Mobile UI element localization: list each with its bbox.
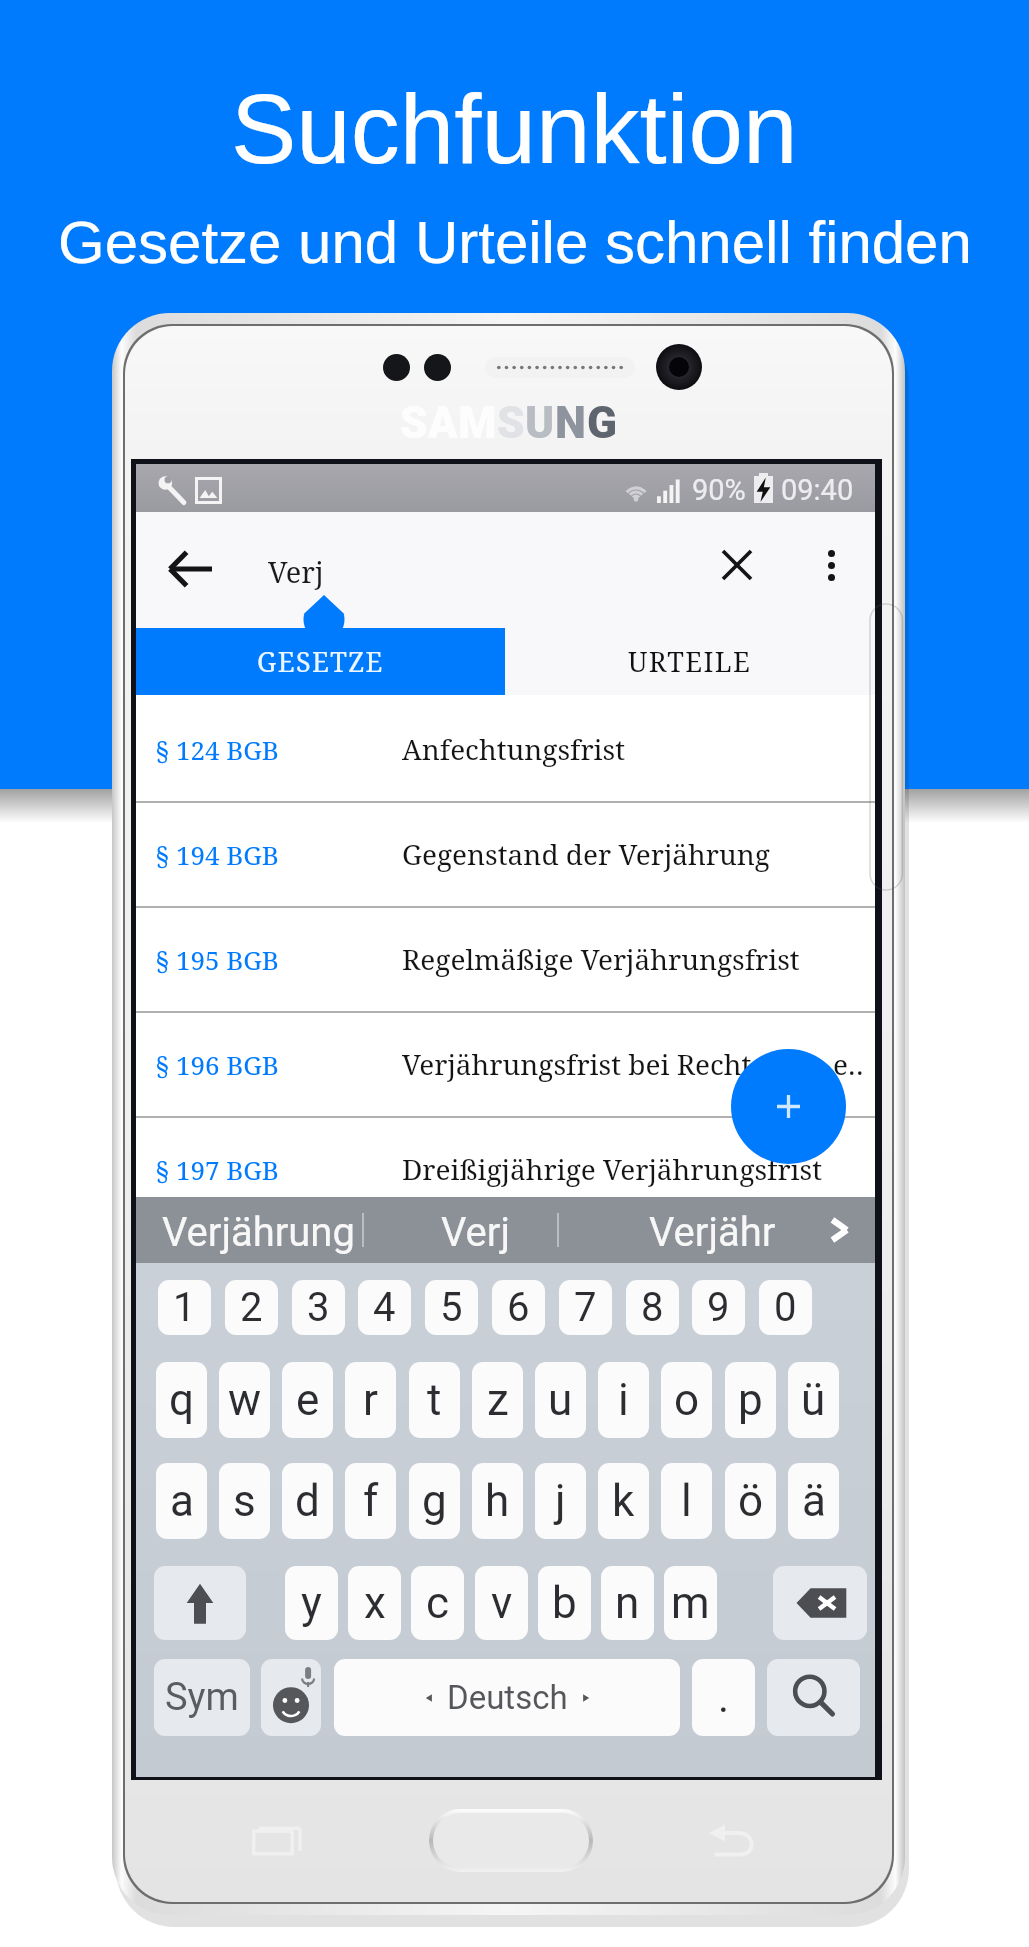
staticText: 0 (774, 1284, 797, 1331)
button[interactable]: . (692, 1659, 755, 1736)
button[interactable]: Backspace (773, 1566, 867, 1640)
button[interactable]: h (472, 1463, 523, 1539)
staticText: URTEILE (628, 643, 752, 680)
button[interactable]: URTEILE (505, 628, 875, 695)
staticText: § 197 BGB (155, 1152, 279, 1187)
button[interactable]: j (535, 1463, 586, 1539)
staticText: U (525, 397, 555, 449)
button[interactable]: § 196 BGB (136, 1013, 875, 1116)
button[interactable]: y (285, 1566, 338, 1640)
button[interactable]: 8 (626, 1280, 679, 1335)
staticText: 8 (641, 1284, 664, 1331)
button[interactable]: p (725, 1362, 776, 1438)
button[interactable]: Deutsch (334, 1659, 680, 1736)
staticText: m (671, 1577, 710, 1629)
staticText: 1 (173, 1284, 196, 1331)
button[interactable]: l (661, 1463, 712, 1539)
button[interactable]: b (538, 1566, 591, 1640)
button[interactable]: g (409, 1463, 460, 1539)
button[interactable]: f (345, 1463, 396, 1539)
button[interactable]: q (156, 1362, 207, 1438)
button[interactable]: Shift (154, 1566, 246, 1640)
staticText: n (615, 1577, 640, 1629)
staticText: 90% (692, 473, 746, 507)
staticText: 09:40 (781, 473, 854, 507)
button[interactable]: v (475, 1566, 528, 1640)
button[interactable]: ü (788, 1362, 839, 1438)
button[interactable]: 9 (692, 1280, 745, 1335)
button[interactable]: s (219, 1463, 270, 1539)
button[interactable]: e (282, 1362, 333, 1438)
staticText: Regelmäßige Verjährungsfrist (402, 940, 864, 978)
staticText: 2 (240, 1284, 263, 1331)
button[interactable]: § 197 BGB (136, 1118, 875, 1198)
button[interactable]: r (345, 1362, 396, 1438)
button[interactable]: More options (802, 536, 860, 594)
staticText: Gegenstand der Verjährung (402, 835, 864, 873)
button[interactable]: o (661, 1362, 712, 1438)
button[interactable]: ä (788, 1463, 839, 1539)
button[interactable]: n (601, 1566, 654, 1640)
button[interactable]: z (472, 1362, 523, 1438)
button[interactable]: 0 (759, 1280, 812, 1335)
staticText: p (738, 1374, 763, 1426)
button[interactable]: d (282, 1463, 333, 1539)
staticText: Dreißigjährige Verjährungsfrist (402, 1150, 864, 1188)
button[interactable]: Sym (154, 1659, 250, 1736)
staticText: g (422, 1475, 447, 1527)
staticText: k (612, 1475, 635, 1527)
button[interactable]: Verjähr (649, 1209, 776, 1256)
button[interactable]: w (219, 1362, 270, 1438)
button[interactable]: a (156, 1463, 207, 1539)
staticText: Sym (165, 1675, 239, 1720)
staticText: 3 (307, 1284, 330, 1331)
button[interactable]: Search (767, 1659, 860, 1736)
button[interactable]: More suggestions (808, 1197, 870, 1263)
button[interactable]: 2 (225, 1280, 278, 1335)
staticText: Anfechtungsfrist (402, 730, 864, 768)
button[interactable]: Emoji (261, 1659, 321, 1736)
button[interactable]: Verjährung (162, 1209, 355, 1256)
button[interactable]: Verj (441, 1209, 510, 1256)
staticText: G (587, 397, 618, 449)
button[interactable]: 5 (425, 1280, 478, 1335)
staticText: t (427, 1374, 442, 1426)
button[interactable]: Recents (246, 1823, 308, 1869)
staticText: GESETZE (257, 643, 384, 680)
button[interactable]: 4 (358, 1280, 411, 1335)
staticText: o (674, 1374, 700, 1426)
staticText: ü (801, 1374, 826, 1426)
button[interactable]: 3 (292, 1280, 345, 1335)
button[interactable]: § 194 BGB (136, 803, 875, 906)
button[interactable]: m (664, 1566, 717, 1640)
button[interactable]: Clear search (708, 536, 766, 594)
staticText: e (296, 1374, 320, 1426)
staticText: Verj (268, 552, 324, 591)
staticText: a (170, 1475, 194, 1527)
button[interactable]: u (535, 1362, 586, 1438)
button[interactable]: GESETZE (136, 628, 505, 695)
staticText: z (487, 1374, 509, 1426)
staticText: j (555, 1475, 566, 1527)
button[interactable]: § 124 BGB (136, 698, 875, 801)
button[interactable]: t (409, 1362, 460, 1438)
button[interactable]: 6 (492, 1280, 545, 1335)
button[interactable]: 7 (559, 1280, 612, 1335)
button[interactable]: Add (731, 1049, 846, 1164)
staticText: § 195 BGB (155, 942, 279, 977)
button[interactable]: ö (725, 1463, 776, 1539)
button[interactable]: k (598, 1463, 649, 1539)
button[interactable]: § 195 BGB (136, 908, 875, 1011)
button[interactable]: Back (161, 539, 221, 599)
staticText: S (497, 397, 525, 449)
button[interactable]: 1 (158, 1280, 211, 1335)
button[interactable]: Back (706, 1821, 768, 1867)
staticText: h (485, 1475, 510, 1527)
staticText: § 196 BGB (155, 1047, 279, 1082)
staticText: 6 (507, 1284, 530, 1331)
button[interactable]: Home (433, 1813, 589, 1868)
button[interactable]: i (598, 1362, 649, 1438)
button[interactable]: x (348, 1566, 401, 1640)
button[interactable]: c (411, 1566, 464, 1640)
staticText: r (363, 1374, 378, 1426)
